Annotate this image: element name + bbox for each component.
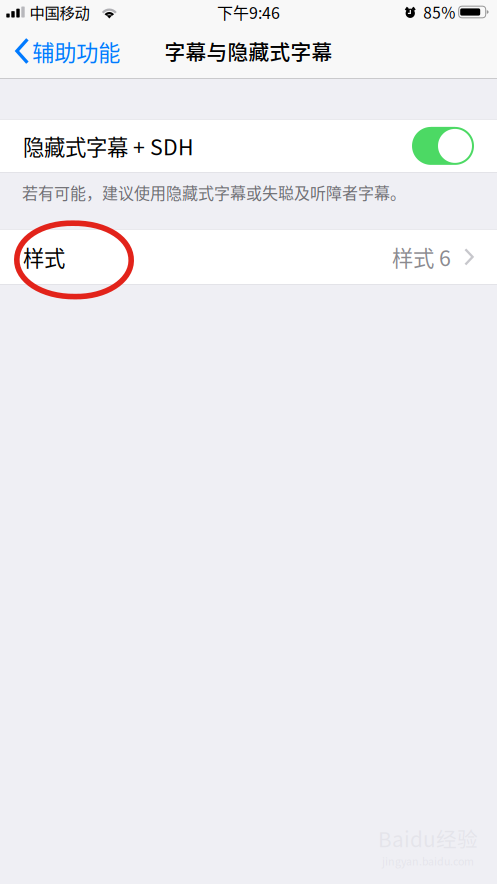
staticText: 85%	[423, 1, 455, 23]
staticText: 字幕与隐藏式字幕	[164, 36, 332, 66]
staticText: 样式 6	[392, 241, 451, 272]
button[interactable]: 隐藏式字幕 + SDH	[412, 127, 474, 165]
button[interactable]: 样式	[0, 230, 497, 284]
staticText: 中国移动	[29, 1, 89, 23]
staticText: 若有可能，建议使用隐藏式字幕或失聪及听障者字幕。	[22, 181, 406, 204]
staticText: 样式	[23, 241, 65, 272]
staticText: Baidu经验	[378, 823, 478, 853]
staticText: 下午9:46	[217, 0, 280, 24]
staticText: 隐藏式字幕 + SDH	[23, 130, 194, 161]
button[interactable]: 辅助功能	[9, 27, 126, 75]
staticText: 辅助功能	[32, 35, 120, 67]
